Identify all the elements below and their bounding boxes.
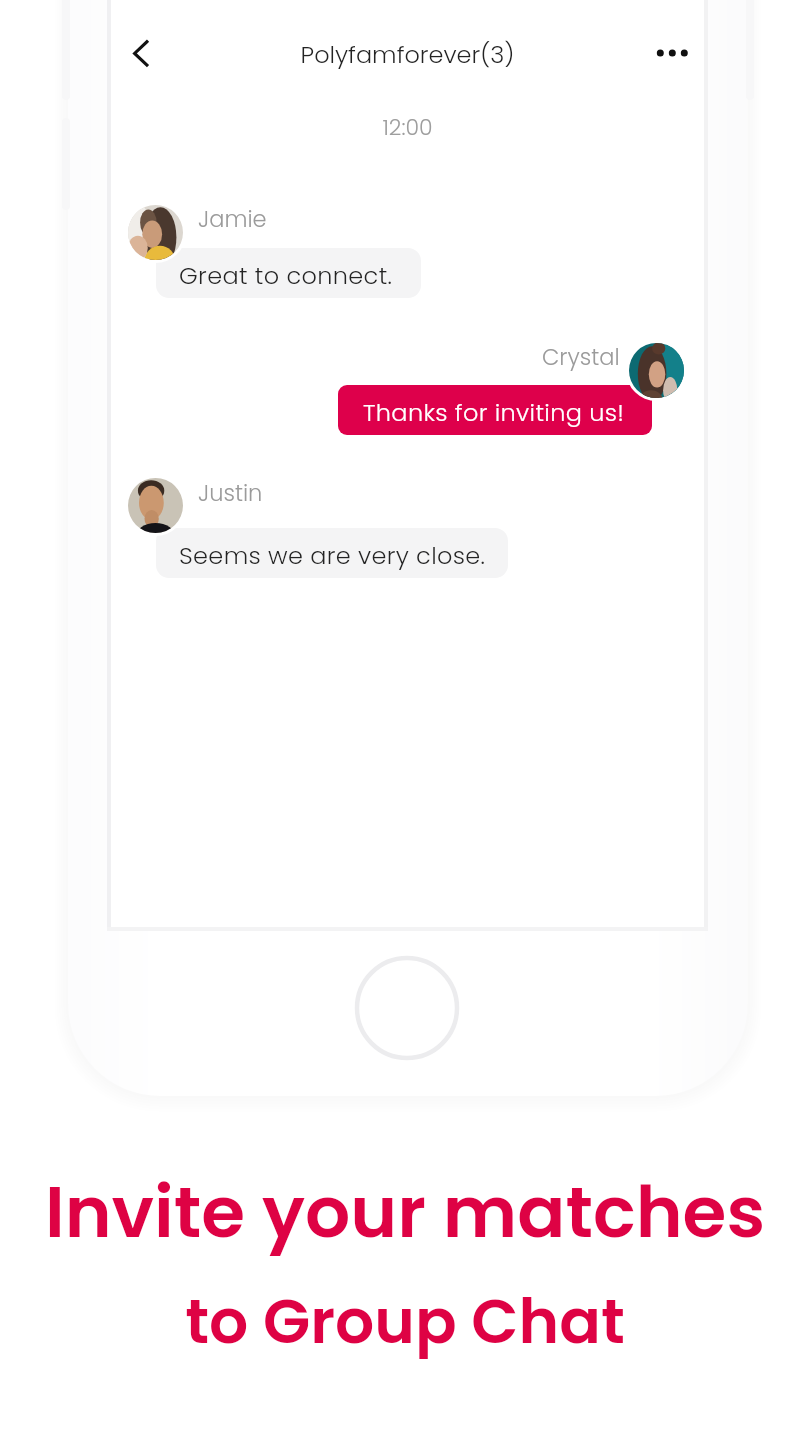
- staticText: 12:00: [110, 112, 705, 143]
- staticText: Great to connect.: [179, 259, 393, 293]
- staticText: Thanks for inviting us!: [363, 396, 625, 430]
- button[interactable]: Back: [118, 26, 174, 82]
- button[interactable]: Great to connect.: [156, 248, 421, 298]
- staticText: Polyfamforever(3): [110, 38, 705, 72]
- button[interactable]: Thanks for inviting us!: [338, 385, 652, 435]
- staticText: Jamie: [198, 203, 267, 234]
- staticText: to Group Chat: [0, 1278, 810, 1364]
- button[interactable]: More options: [632, 26, 688, 82]
- button[interactable]: Seems we are very close.: [156, 528, 508, 578]
- staticText: Seems we are very close.: [179, 539, 486, 573]
- staticText: Justin: [198, 477, 263, 508]
- staticText: Crystal: [542, 341, 620, 372]
- staticText: Invite your matches: [0, 1162, 810, 1261]
